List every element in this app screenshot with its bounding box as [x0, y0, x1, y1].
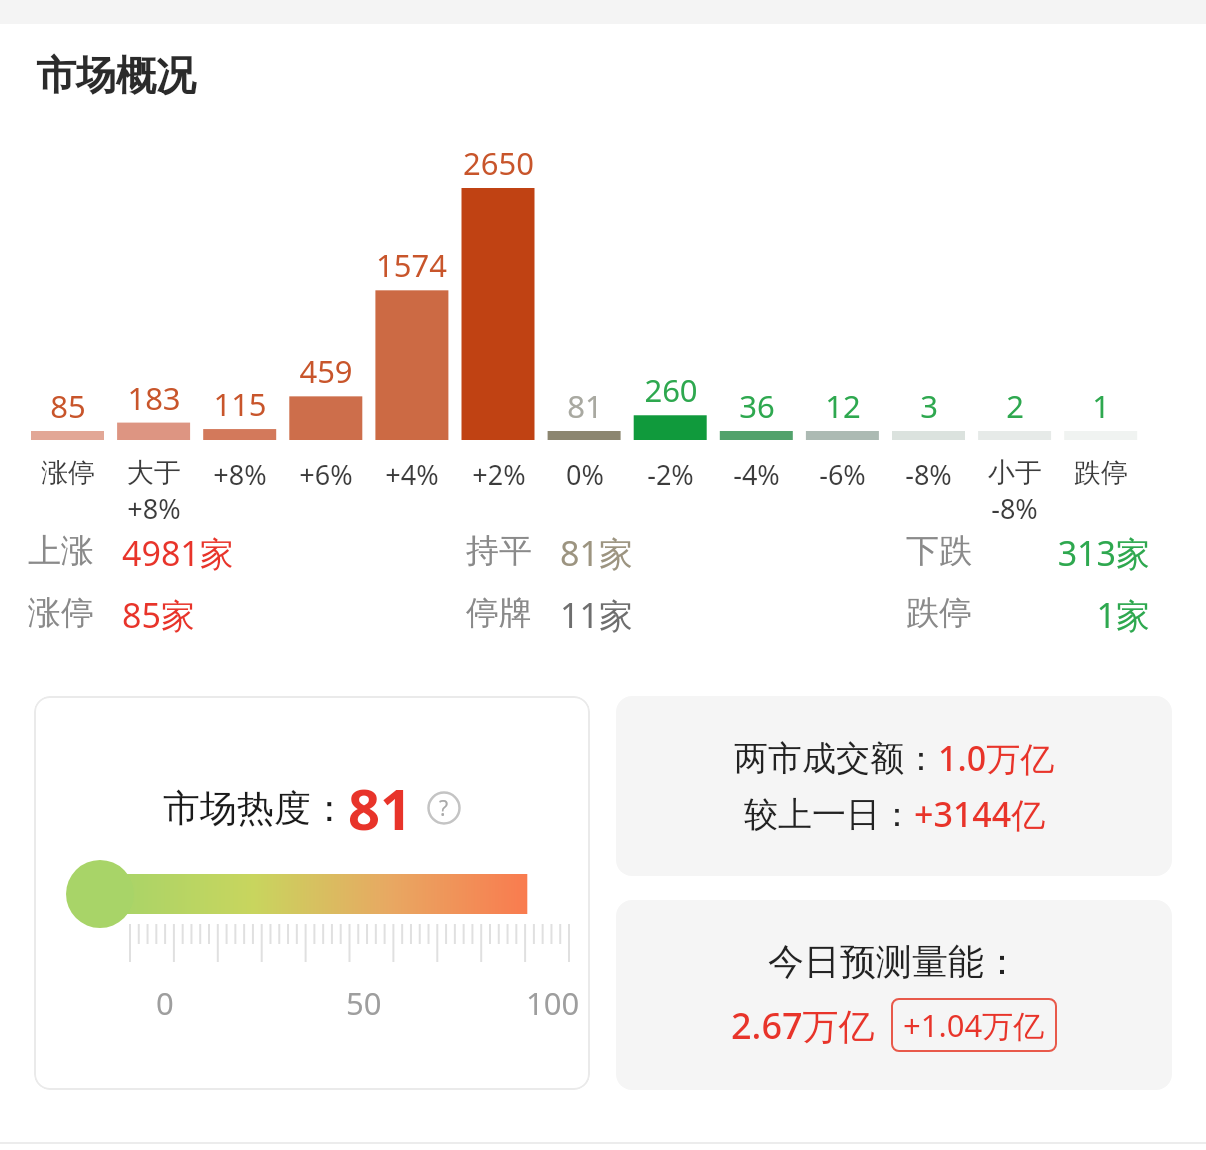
staticText: 2: [1006, 385, 1024, 427]
staticText: 11家: [560, 592, 633, 638]
staticText: 81家: [560, 530, 633, 576]
staticText: 1574: [376, 244, 447, 286]
staticText: 3: [920, 385, 938, 427]
staticText: 今日预测量能：: [768, 939, 1020, 984]
staticText: 0: [156, 982, 174, 1024]
staticText: 115: [213, 383, 267, 425]
staticText: -8%: [991, 490, 1038, 527]
staticText: 上涨: [28, 530, 94, 572]
staticText: 跌停: [1074, 456, 1128, 490]
staticText: 100: [526, 982, 580, 1024]
staticText: 260: [644, 369, 698, 411]
staticText: +4%: [385, 456, 439, 493]
staticText: +2%: [472, 456, 526, 493]
staticText: -6%: [819, 456, 866, 493]
staticText: 2.67万亿: [731, 1001, 875, 1050]
staticText: +6%: [299, 456, 353, 493]
staticText: 85: [50, 385, 86, 427]
staticText: 36: [739, 385, 775, 427]
staticText: 12: [825, 385, 861, 427]
staticText: 81: [567, 385, 603, 427]
staticText: -8%: [905, 456, 952, 493]
staticText: 2650: [463, 142, 534, 184]
staticText: 4981家: [122, 530, 234, 576]
button[interactable]: 今日预测量能：: [616, 900, 1172, 1090]
staticText: 459: [299, 350, 353, 392]
staticText: -2%: [647, 456, 694, 493]
staticText: 持平: [466, 530, 532, 572]
staticText: 50: [346, 982, 382, 1024]
staticText: 跌停: [906, 592, 972, 634]
staticText: 0%: [566, 456, 604, 493]
staticText: 1.0万亿: [938, 735, 1055, 781]
staticText: 1家: [1096, 592, 1150, 638]
button[interactable]: 两市成交额：: [616, 696, 1172, 876]
staticText: ?: [439, 794, 449, 823]
staticText: 大于: [127, 456, 181, 490]
staticText: +1.04万亿: [903, 1004, 1045, 1046]
staticText: 较上一日：: [744, 793, 914, 836]
staticText: 1: [1092, 385, 1110, 427]
button[interactable]: 帮助: [427, 791, 461, 825]
staticText: 313家: [1057, 530, 1150, 576]
staticText: 下跌: [906, 530, 972, 572]
staticText: 停牌: [466, 592, 532, 634]
staticText: 市场概况: [36, 50, 196, 100]
staticText: 涨停: [28, 592, 94, 634]
staticText: 81: [348, 770, 413, 846]
staticText: +3144亿: [914, 791, 1046, 837]
staticText: -4%: [733, 456, 780, 493]
staticText: 85家: [122, 592, 195, 638]
staticText: 183: [127, 377, 181, 419]
staticText: 小于: [988, 456, 1042, 490]
staticText: +8%: [213, 456, 267, 493]
staticText: +8%: [127, 490, 181, 527]
staticText: 涨停: [41, 456, 95, 490]
staticText: 市场热度：: [163, 785, 348, 832]
staticText: 两市成交额：: [734, 737, 938, 780]
button[interactable]: 市场热度：: [34, 696, 590, 1090]
